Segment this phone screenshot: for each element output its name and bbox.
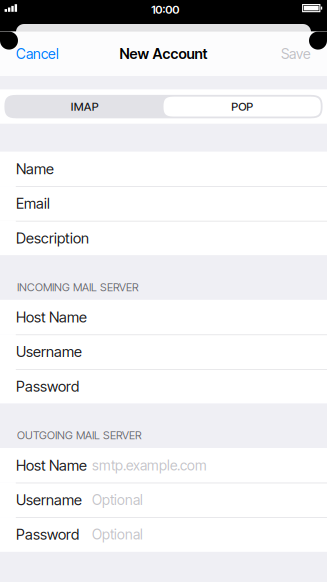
- button[interactable]: IMAP: [6, 97, 163, 116]
- staticText: Host Name: [16, 308, 87, 326]
- staticText: Name: [16, 160, 54, 178]
- staticText: Username: [16, 491, 82, 509]
- button[interactable]: Host Name: [0, 300, 327, 334]
- staticText: IMAP: [71, 100, 99, 114]
- button[interactable]: Name: [0, 152, 327, 186]
- staticText: Cancel: [16, 45, 59, 62]
- staticText: 10:00: [151, 3, 179, 16]
- staticText: New Account: [119, 45, 207, 62]
- staticText: Optional: [92, 526, 143, 543]
- button[interactable]: Email: [0, 186, 327, 221]
- staticText: Username: [16, 343, 82, 360]
- staticText: Save: [281, 45, 311, 62]
- button[interactable]: Password: [0, 517, 327, 552]
- button[interactable]: Password: [0, 369, 327, 404]
- button[interactable]: Cancel: [0, 32, 75, 76]
- staticText: smtp.example.com: [92, 457, 207, 474]
- staticText: Optional: [92, 491, 143, 508]
- button[interactable]: Host Name: [0, 448, 327, 483]
- staticText: INCOMING MAIL SERVER: [17, 280, 139, 294]
- staticText: Host Name: [16, 456, 87, 474]
- staticText: Description: [16, 229, 89, 247]
- staticText: Password: [16, 377, 79, 395]
- staticText: OUTGOING MAIL SERVER: [17, 429, 142, 442]
- button[interactable]: Username: [0, 334, 327, 369]
- staticText: Email: [16, 195, 50, 212]
- staticText: Password: [16, 526, 79, 543]
- button[interactable]: Username: [0, 483, 327, 517]
- staticText: POP: [231, 100, 253, 114]
- button[interactable]: Description: [0, 221, 327, 255]
- button[interactable]: Save: [265, 32, 327, 76]
- button[interactable]: POP: [163, 97, 321, 116]
